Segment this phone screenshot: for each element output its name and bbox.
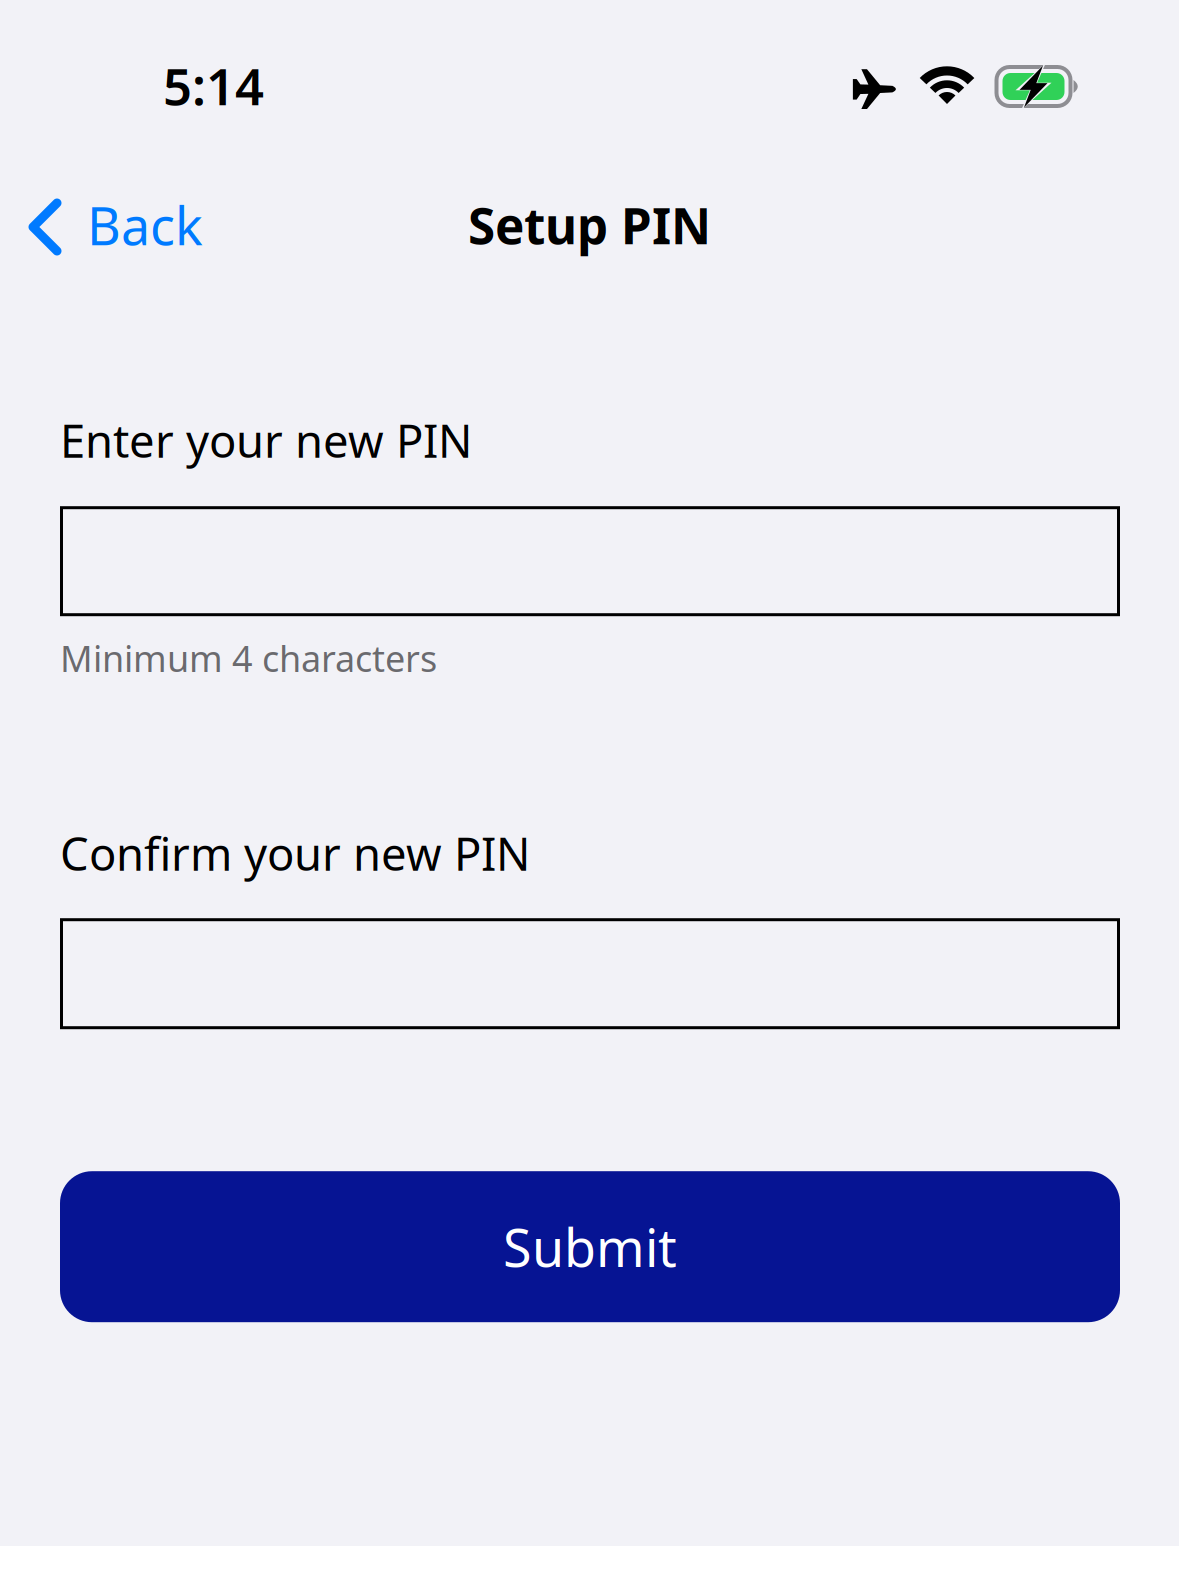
staticText: Enter your new PIN [60, 410, 472, 470]
staticText: 5:14 [163, 52, 264, 119]
staticText: Confirm your new PIN [60, 823, 530, 883]
button[interactable]: Back [0, 183, 233, 267]
staticText: Setup PIN [468, 192, 711, 258]
button[interactable]: Submit [60, 1171, 1120, 1322]
button[interactable]: Confirm your new PIN [60, 918, 1120, 1029]
staticText: Submit [503, 1212, 677, 1281]
staticText: Minimum 4 characters [60, 634, 437, 682]
button[interactable]: Enter your new PIN [60, 506, 1120, 616]
staticText: Back [87, 190, 203, 260]
